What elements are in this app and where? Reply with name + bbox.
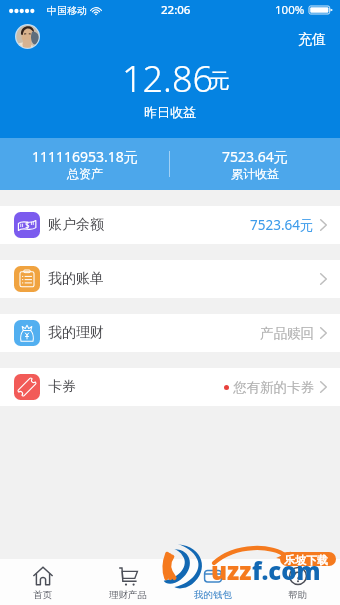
button[interactable]: 我的理财 bbox=[0, 314, 340, 352]
staticText: 帮助 bbox=[288, 589, 307, 601]
button[interactable]: Profile bbox=[15, 24, 40, 49]
staticText: 理财产品 bbox=[109, 589, 147, 601]
button[interactable]: 帮助 bbox=[255, 559, 340, 605]
staticText: 首页 bbox=[33, 589, 52, 601]
button[interactable]: 账户余额 bbox=[0, 206, 340, 244]
staticText: 乐坡下载 bbox=[284, 553, 328, 567]
staticText: 我的账单 bbox=[48, 270, 104, 288]
staticText: 充值 bbox=[298, 31, 326, 49]
button[interactable]: 充值 bbox=[284, 27, 340, 53]
staticText: 总资产 bbox=[67, 166, 103, 181]
staticText: 22:06 bbox=[161, 2, 191, 18]
staticText: 100% bbox=[275, 2, 305, 18]
button[interactable]: 首页 bbox=[0, 559, 85, 605]
staticText: 累计收益 bbox=[231, 166, 279, 181]
button[interactable]: 我的钱包 bbox=[170, 559, 255, 605]
staticText: 您有新的卡券 bbox=[233, 379, 314, 396]
staticText: 12.86 bbox=[122, 54, 214, 103]
staticText: 111116953.18元 bbox=[32, 147, 138, 166]
staticText: 账户余额 bbox=[48, 216, 104, 234]
staticText: 我的理财 bbox=[48, 324, 104, 342]
staticText: 卡券 bbox=[48, 378, 76, 396]
button[interactable]: 理财产品 bbox=[85, 559, 170, 605]
staticText: 7523.64元 bbox=[250, 216, 314, 234]
button[interactable]: 我的账单 bbox=[0, 260, 340, 298]
staticText: 昨日收益 bbox=[144, 104, 196, 120]
staticText: uzz bbox=[211, 554, 252, 587]
staticText: f.com bbox=[252, 554, 321, 587]
staticText: 7523.64元 bbox=[222, 147, 288, 166]
button[interactable]: 卡券 bbox=[0, 368, 340, 406]
staticText: 中国移动 bbox=[47, 4, 87, 17]
staticText: 元 bbox=[209, 68, 230, 94]
staticText: 产品赎回 bbox=[260, 325, 314, 342]
staticText: 我的钱包 bbox=[194, 589, 232, 601]
